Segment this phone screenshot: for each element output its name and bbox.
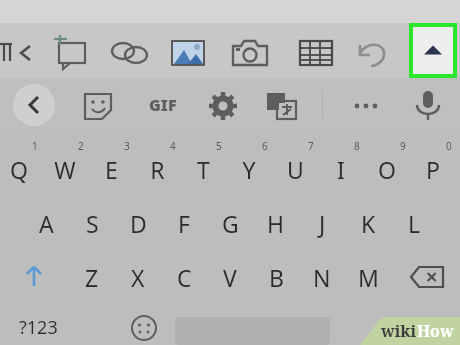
button[interactable]: M	[345, 252, 391, 302]
staticText: A	[39, 208, 54, 239]
staticText: How	[417, 320, 454, 342]
button[interactable]: Add comment	[50, 35, 94, 69]
staticText: W	[54, 154, 76, 185]
staticText: N	[313, 262, 331, 293]
button[interactable]: More options	[344, 90, 388, 120]
staticText: GIF	[149, 94, 177, 116]
button[interactable]: Y	[230, 136, 276, 192]
button[interactable]: B	[253, 252, 299, 302]
button[interactable]: C	[161, 252, 207, 302]
button[interactable]: F	[161, 197, 207, 249]
button[interactable]: A	[23, 197, 69, 249]
staticText: O	[378, 154, 396, 185]
staticText: Q	[10, 154, 28, 185]
staticText: 1	[32, 139, 38, 153]
button[interactable]: Undo	[352, 35, 394, 69]
staticText: D	[130, 208, 147, 239]
button[interactable]: V	[207, 252, 253, 302]
button[interactable]: N	[299, 252, 345, 302]
staticText: ?123	[19, 315, 58, 340]
button[interactable]: Formatting	[0, 35, 40, 67]
staticText: R	[150, 154, 165, 185]
button[interactable]: Back	[13, 84, 55, 126]
button[interactable]: I	[322, 136, 368, 192]
button[interactable]: Insert table	[294, 35, 338, 69]
staticText: 8	[354, 139, 360, 153]
staticText: 2	[78, 139, 84, 153]
button[interactable]: X	[115, 252, 161, 302]
button[interactable]: H	[253, 197, 299, 249]
staticText: T	[197, 154, 210, 185]
staticText: X	[131, 262, 145, 293]
staticText: P	[426, 154, 440, 185]
staticText: 7	[308, 139, 314, 153]
button[interactable]: Emoji	[122, 310, 166, 345]
staticText: C	[177, 262, 192, 293]
staticText: V	[223, 262, 237, 293]
button[interactable]: G	[207, 197, 253, 249]
staticText: 5	[216, 139, 222, 153]
button[interactable]: ?123	[8, 310, 68, 345]
button[interactable]: R	[138, 136, 184, 192]
button[interactable]: E	[92, 136, 138, 192]
staticText: 4	[170, 139, 176, 153]
button[interactable]: Z	[69, 252, 115, 302]
staticText: wiki	[381, 320, 417, 342]
button[interactable]: GIF	[140, 90, 186, 120]
button[interactable]: Collapse toolbar	[413, 27, 453, 74]
staticText: Y	[242, 154, 256, 185]
staticText: U	[287, 154, 304, 185]
button[interactable]: Translate	[262, 89, 304, 121]
button[interactable]: Settings	[203, 90, 243, 120]
staticText: J	[319, 208, 326, 239]
staticText: 9	[400, 139, 406, 153]
staticText: 0	[446, 139, 452, 153]
button[interactable]: J	[299, 197, 345, 249]
button[interactable]: Stickers	[78, 90, 118, 120]
button[interactable]: P	[414, 136, 460, 192]
button[interactable]: U	[276, 136, 322, 192]
staticText: M	[358, 262, 379, 293]
staticText: K	[361, 208, 376, 239]
staticText: G	[222, 208, 239, 239]
button[interactable]: Backspace	[400, 252, 454, 302]
button[interactable]: S	[69, 197, 115, 249]
staticText: B	[269, 262, 284, 293]
staticText: 3	[124, 139, 130, 153]
button[interactable]: Shift	[8, 252, 60, 302]
button[interactable]: W	[46, 136, 92, 192]
staticText: E	[105, 154, 118, 185]
button[interactable]: Take photo	[228, 35, 272, 69]
button[interactable]: K	[345, 197, 391, 249]
button[interactable]: Q	[0, 136, 46, 192]
staticText: H	[267, 208, 285, 239]
button[interactable]: Insert link	[108, 35, 152, 69]
staticText: 6	[262, 139, 268, 153]
staticText: I	[337, 154, 345, 185]
staticText: S	[86, 208, 99, 239]
staticText: Z	[85, 262, 99, 293]
staticText: F	[178, 208, 190, 239]
button[interactable]: Insert image	[166, 35, 210, 69]
button[interactable]: Voice input	[408, 88, 448, 122]
staticText: L	[408, 208, 421, 239]
button[interactable]: T	[184, 136, 230, 192]
button[interactable]: D	[115, 197, 161, 249]
button[interactable]: O	[368, 136, 414, 192]
button[interactable]: L	[391, 197, 437, 249]
